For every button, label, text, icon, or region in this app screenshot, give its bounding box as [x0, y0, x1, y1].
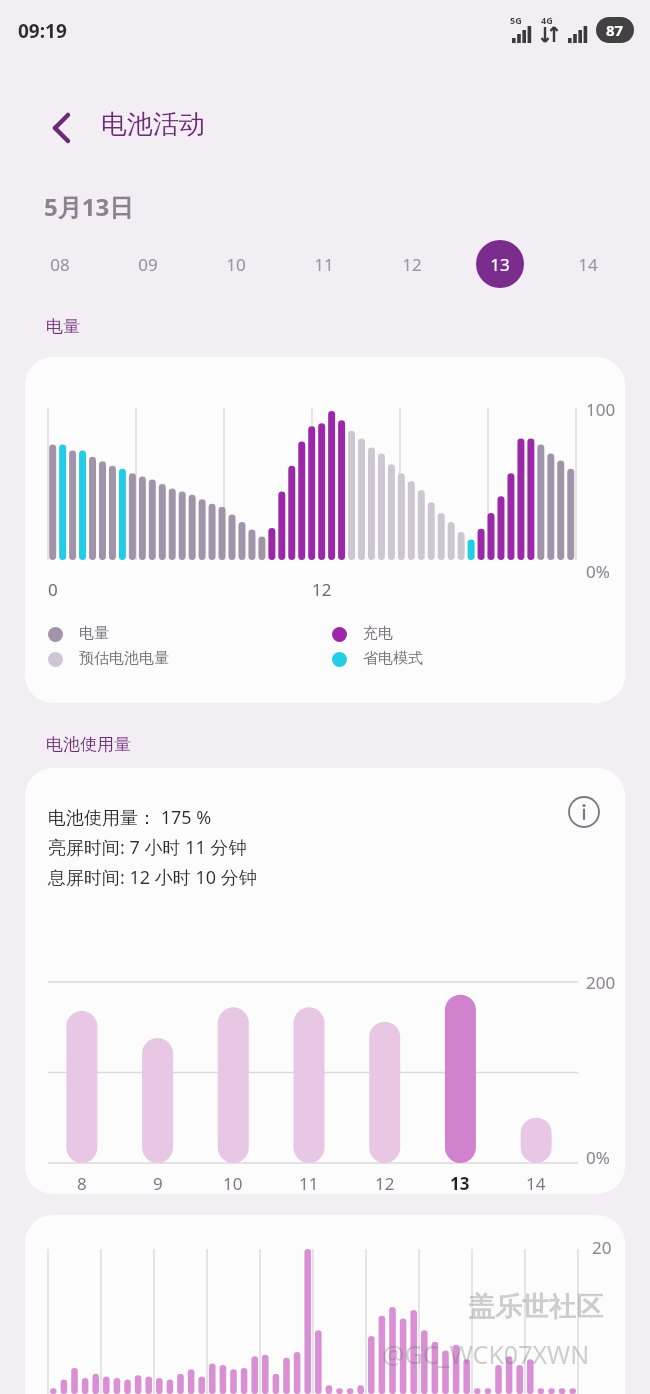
staticText: 12: [402, 253, 422, 276]
staticText: 预估电池电量: [79, 649, 169, 668]
staticText: 0%: [586, 560, 610, 583]
staticText: 11: [314, 253, 334, 276]
staticText: 充电: [363, 624, 393, 643]
staticText: 电量: [46, 316, 80, 337]
staticText: 息屏时间: 12 小时 10 分钟: [48, 865, 257, 890]
staticText: 亮屏时间: 7 小时 11 分钟: [48, 835, 247, 860]
button[interactable]: Back: [33, 100, 89, 156]
staticText: @GC_WCK07XWN: [382, 1337, 590, 1371]
staticText: 20: [592, 1236, 612, 1259]
staticText: 电池使用量： 175 %: [48, 805, 212, 830]
staticText: 电量: [79, 624, 109, 643]
button[interactable]: [25, 768, 625, 1194]
button[interactable]: 11: [300, 240, 348, 288]
staticText: 13: [490, 253, 510, 276]
staticText: 9: [153, 1172, 163, 1195]
staticText: 09: [138, 253, 158, 276]
staticText: 87: [606, 20, 624, 40]
staticText: 8: [77, 1172, 87, 1195]
staticText: 10: [223, 1172, 243, 1195]
button[interactable]: [25, 1215, 625, 1394]
button[interactable]: Info: [562, 790, 606, 834]
staticText: 5月13日: [44, 190, 134, 223]
staticText: 4G: [541, 14, 553, 26]
staticText: 盖乐世社区: [468, 1290, 603, 1324]
button[interactable]: 13: [476, 240, 524, 288]
staticText: 12: [312, 578, 332, 601]
staticText: 0: [48, 578, 58, 601]
button[interactable]: 12: [388, 240, 436, 288]
staticText: 14: [526, 1172, 546, 1195]
staticText: 5G: [510, 14, 522, 26]
button[interactable]: 09: [124, 240, 172, 288]
button[interactable]: 14: [564, 240, 612, 288]
staticText: 09:19: [18, 18, 67, 44]
button[interactable]: 10: [212, 240, 260, 288]
staticText: 0%: [586, 1146, 610, 1169]
staticText: 电池活动: [101, 108, 205, 141]
button[interactable]: 08: [36, 240, 84, 288]
staticText: 200: [586, 971, 616, 994]
staticText: 14: [578, 253, 598, 276]
staticText: 13: [450, 1172, 470, 1195]
button[interactable]: [25, 357, 625, 703]
staticText: 11: [299, 1172, 319, 1195]
staticText: 08: [50, 253, 70, 276]
staticText: 10: [226, 253, 246, 276]
staticText: 100: [586, 398, 616, 421]
staticText: 电池使用量: [46, 734, 131, 755]
staticText: 12: [375, 1172, 395, 1195]
staticText: 省电模式: [363, 649, 423, 668]
